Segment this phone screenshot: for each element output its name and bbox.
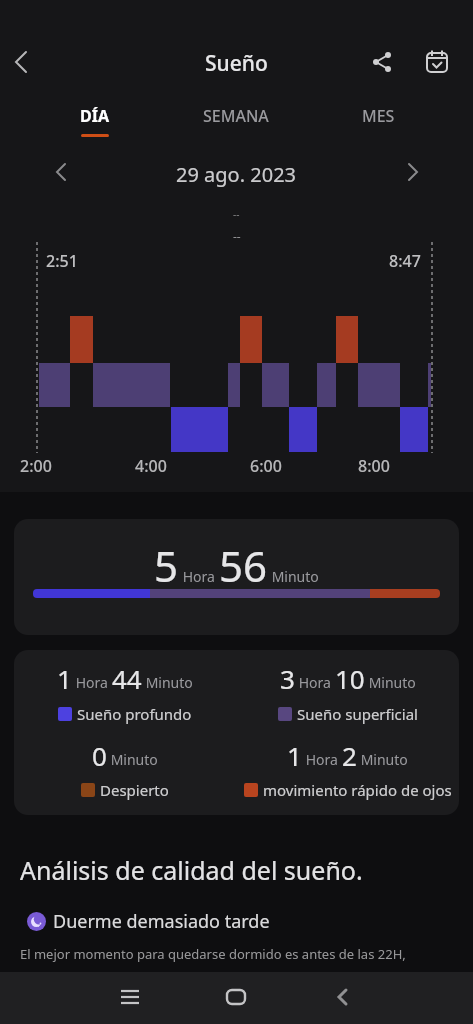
button[interactable]	[370, 50, 394, 74]
button[interactable]: Sueño superficial	[236, 704, 459, 724]
staticText: Sueño superficial	[297, 704, 418, 724]
button[interactable]: 1	[14, 650, 459, 815]
button[interactable]: movimiento rápido de ojos	[236, 780, 459, 800]
button[interactable]	[119, 986, 141, 1008]
button[interactable]	[52, 162, 72, 182]
staticText: 2	[342, 738, 357, 773]
staticText: 4:00	[135, 455, 167, 477]
staticText: Minuto	[142, 673, 193, 692]
button[interactable]: DÍA	[24, 105, 165, 137]
staticText: 1	[57, 661, 72, 696]
staticText: DÍA	[80, 105, 110, 127]
button[interactable]	[332, 986, 354, 1008]
button[interactable]: 5	[14, 519, 459, 635]
staticText: Hora	[179, 567, 219, 586]
button[interactable]	[10, 50, 34, 74]
staticText: 2:00	[20, 455, 52, 477]
staticText: Hora	[72, 673, 112, 692]
staticText: Hora	[295, 673, 335, 692]
staticText: El mejor momento para quedarse dormido e…	[20, 945, 406, 963]
staticText: Minuto	[365, 673, 416, 692]
staticText: Sueño	[205, 49, 268, 78]
staticText: Duerme demasiado tarde	[53, 909, 270, 934]
button[interactable]: SEMANA	[165, 105, 307, 127]
staticText: Minuto	[357, 750, 408, 769]
button[interactable]	[424, 49, 450, 75]
staticText: 6:00	[250, 455, 282, 477]
staticText: 1	[287, 738, 302, 773]
staticText: 8:47	[389, 250, 421, 272]
staticText: Minuto	[268, 567, 319, 586]
staticText: Minuto	[107, 750, 158, 769]
staticText: 3	[280, 661, 295, 696]
staticText: --	[233, 228, 241, 244]
button[interactable]	[402, 162, 422, 182]
staticText: movimiento rápido de ojos	[263, 780, 452, 800]
staticText: 0	[92, 738, 107, 773]
button[interactable]	[225, 986, 247, 1008]
button[interactable]: Sueño profundo	[14, 704, 236, 724]
staticText: 56	[219, 537, 268, 594]
staticText: 5	[154, 537, 179, 594]
button[interactable]: MES	[307, 105, 449, 127]
staticText: 10	[335, 661, 365, 696]
staticText: 8:00	[358, 455, 390, 477]
staticText: Análisis de calidad del sueño.	[20, 853, 363, 887]
button[interactable]: Duerme demasiado tarde	[27, 909, 270, 934]
staticText: Despierto	[100, 780, 169, 800]
staticText: Sueño profundo	[77, 704, 192, 724]
button[interactable]: Despierto	[14, 780, 236, 800]
staticText: MES	[362, 105, 395, 127]
staticText: SEMANA	[203, 105, 269, 127]
staticText: 29 ago. 2023	[176, 161, 297, 188]
staticText: 44	[112, 661, 142, 696]
staticText: Hora	[302, 750, 342, 769]
staticText: 2:51	[46, 250, 78, 272]
staticText: --	[233, 207, 240, 221]
